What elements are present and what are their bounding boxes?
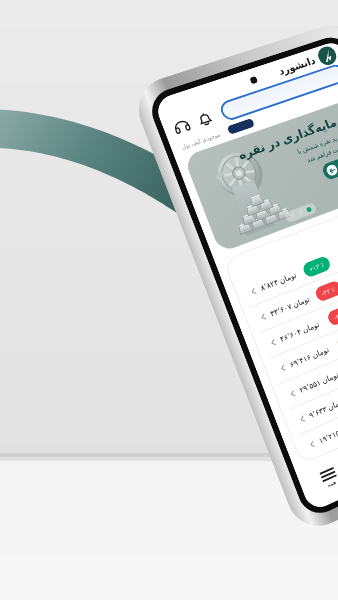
staticText: امکان خرید نقره شمش با [295, 126, 338, 156]
staticText: -۲۵ ٪ [332, 308, 338, 322]
button[interactable]: ۹٬۶۳۳ تومان [282, 342, 338, 438]
button[interactable]: ۱۹٬۲۱۵ تومان [291, 367, 338, 463]
button[interactable]: ۸٬۸۲۳ تومان [232, 220, 338, 310]
staticText: بهترین قیمت فراهم شد [305, 136, 338, 164]
staticText: +۱۳ ٪ [308, 260, 326, 274]
staticText: ۴۶٬۶۰۴ تومان [278, 319, 321, 344]
staticText: -۲۲ ٪ [320, 284, 337, 298]
button[interactable]: Search [218, 62, 338, 123]
staticText: ۹٬۶۳۳ تومان [307, 396, 338, 420]
staticText: سرمایه‌گذاری در نقره [236, 107, 338, 162]
staticText: ۸٬۸۲۳ تومان [259, 269, 298, 293]
button[interactable]: مشاهده [320, 149, 338, 181]
staticText: ۱۹٬۲۱۵ تومان [317, 419, 338, 446]
button[interactable]: Notifications [194, 108, 216, 130]
staticText: همه [326, 478, 338, 488]
button[interactable]: همه [317, 464, 338, 492]
button[interactable]: ۶۹٬۴۱۶ تومان [262, 293, 338, 387]
button[interactable]: ۴۶٬۶۰۴ تومان [252, 269, 338, 361]
staticText: ۳۳٬۶۰۷ تومان [269, 293, 312, 318]
button[interactable]: ۳۳٬۶۰۷ تومان [242, 244, 338, 335]
staticText: ۲۹٬۵۵۱ تومان [298, 369, 338, 395]
staticText: ۶۹٬۴۱۶ تومان [288, 344, 331, 369]
staticText: موجودی کیف پول [180, 130, 221, 150]
button[interactable]: موجودی کیف پول [176, 81, 338, 155]
staticText: دانشورد [277, 55, 317, 78]
button[interactable]: Support [171, 116, 193, 138]
button[interactable]: ۲۹٬۵۵۱ تومان [272, 318, 338, 412]
